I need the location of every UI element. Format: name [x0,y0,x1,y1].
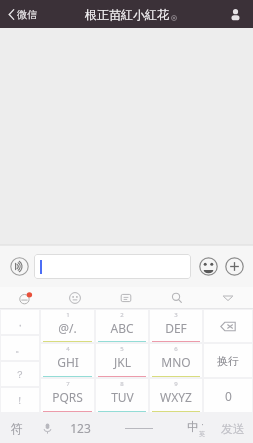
button[interactable]: Emoji [195,253,221,279]
staticText: 4 [66,345,70,353]
staticText: 8 [120,380,124,388]
button[interactable]: 5 [96,344,148,377]
staticText: 发送 [221,421,245,436]
staticText: 微信 [17,8,37,21]
staticText: @/. [58,320,77,336]
staticText: 5 [120,345,124,353]
staticText: DEF [165,320,187,336]
staticText: 7 [66,380,70,388]
staticText: · [201,419,204,430]
staticText: 换行 [217,354,239,368]
button[interactable]: 1 [41,310,94,342]
staticText: 英 [199,430,205,438]
button[interactable]: Contact info [222,1,248,27]
staticText: ！ [15,394,25,407]
staticText: ， [15,316,25,329]
staticText: MNO [161,354,191,370]
staticText: 0 [225,388,232,404]
button[interactable]: Hide keyboard [202,287,253,309]
button[interactable]: Clipboard [100,287,151,309]
button[interactable]: 6 [150,344,202,377]
button[interactable]: 123 [63,414,98,442]
staticText: GHI [57,354,79,370]
staticText: 3 [174,311,178,319]
button[interactable]: 中 [180,414,212,442]
staticText: 符 [11,421,23,436]
button[interactable]: 2 [96,310,148,342]
staticText: 9 [174,380,178,388]
button[interactable]: 符 [1,414,32,442]
button[interactable]: 9 [150,379,202,412]
staticText: 。 [15,342,25,355]
button[interactable]: More [221,253,247,279]
staticText: 根正苗紅小紅花 [85,7,169,22]
button[interactable]: Key [204,310,252,342]
button[interactable]: ！ [1,388,39,412]
staticText: WXYZ [160,389,192,405]
staticText: TUV [111,389,134,405]
button[interactable]: 8 [96,379,148,412]
button[interactable]: 发送 [214,414,252,442]
staticText: JKL [114,354,131,370]
button[interactable]: Key [204,379,252,412]
staticText: 2 [120,311,124,319]
button[interactable]: 7 [41,379,94,412]
staticText: 中 [187,419,199,434]
staticText: 6 [174,345,178,353]
button[interactable]: Voice [34,414,61,442]
button[interactable]: Stickers [0,287,50,309]
staticText: ？ [15,368,25,381]
staticText: 123 [70,420,91,436]
staticText: PQRS [52,389,83,405]
button[interactable]: Voice input [6,253,32,279]
button[interactable]: ？ [1,362,39,386]
button[interactable] [34,254,191,279]
button[interactable]: Search [151,287,202,309]
button[interactable]: 微信 [5,5,40,24]
button[interactable]: 3 [150,310,202,342]
staticText: ABC [110,320,134,336]
button[interactable]: Emoji panel [50,287,100,309]
staticText: 1 [66,311,70,319]
button[interactable]: 4 [41,344,94,377]
button[interactable]: Space [100,414,178,442]
button[interactable]: Key [204,344,252,377]
